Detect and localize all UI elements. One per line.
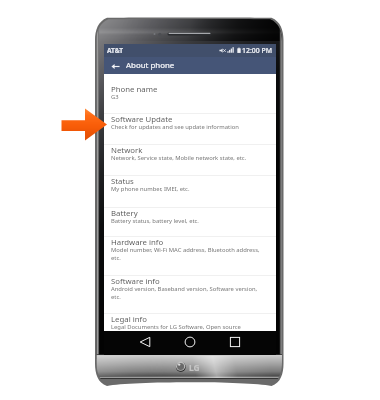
button[interactable]: Legal info	[104, 314, 276, 354]
button[interactable]: Home	[173, 331, 207, 355]
button[interactable]: Phone name	[104, 84, 276, 113]
button[interactable]: Software info	[104, 276, 276, 313]
staticText: Status	[111, 176, 134, 187]
staticText: Android version, Baseband version, Softw…	[111, 285, 262, 301]
staticText: Battery	[111, 208, 138, 219]
staticText: Legal Documents for LG Software, Open so…	[111, 323, 262, 339]
button[interactable]: Status	[104, 176, 276, 207]
staticText: My phone number, IMEI, etc.	[111, 185, 190, 193]
staticText: AT&T	[107, 46, 124, 55]
staticText: LG	[189, 362, 200, 374]
staticText: Model number, Wi-Fi MAC address, Bluetoo…	[111, 246, 262, 262]
staticText: Network	[111, 145, 143, 156]
button[interactable]: Hardware info	[104, 237, 276, 275]
staticText: Check for updates and see update informa…	[111, 123, 239, 131]
button[interactable]: Network	[104, 145, 276, 175]
staticText: About phone	[126, 60, 175, 71]
staticText: 12:00 PM	[242, 46, 272, 55]
button[interactable]: Back	[108, 59, 122, 73]
button[interactable]: Battery	[104, 208, 276, 236]
staticText: Network, Service state, Mobile network s…	[111, 154, 247, 162]
staticText: Legal info	[111, 314, 147, 325]
staticText: G3	[111, 93, 119, 101]
staticText: Software Update	[111, 114, 173, 125]
staticText: Phone name	[111, 84, 158, 95]
staticText: Software info	[111, 276, 160, 287]
button[interactable]: Recent apps	[218, 331, 252, 355]
staticText: Hardware info	[111, 237, 164, 248]
button[interactable]: Software Update	[104, 114, 276, 144]
staticText: Battery status, battery level, etc.	[111, 217, 199, 225]
button[interactable]: Back	[128, 331, 162, 355]
